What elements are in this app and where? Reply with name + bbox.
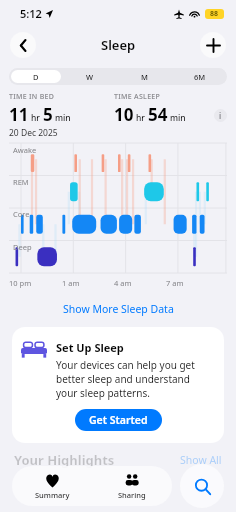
staticText: hr: [136, 112, 145, 124]
staticText: 10: [114, 103, 134, 126]
staticText: Sharing: [118, 490, 146, 500]
staticText: min: [55, 112, 71, 124]
staticText: Get Started: [89, 413, 148, 427]
staticText: 1 am: [62, 278, 80, 288]
button[interactable]: Add: [200, 32, 226, 58]
staticText: Summary: [35, 490, 70, 500]
button[interactable]: W: [65, 70, 115, 83]
staticText: 88: [210, 9, 219, 19]
staticText: Awake: [13, 145, 37, 155]
staticText: D: [33, 72, 39, 82]
staticText: Show More Sleep Data: [63, 302, 174, 316]
staticText: min: [170, 112, 186, 124]
staticText: 5: [43, 103, 53, 126]
staticText: 4 am: [114, 278, 132, 288]
button[interactable]: Get Started: [75, 409, 162, 431]
button[interactable]: Summary: [12, 466, 92, 506]
staticText: Your Highlights: [14, 451, 115, 469]
staticText: Core: [13, 209, 30, 219]
staticText: 11: [9, 103, 29, 126]
button[interactable]: D: [11, 70, 61, 83]
staticText: i: [219, 110, 222, 121]
staticText: M: [141, 72, 148, 82]
staticText: TIME ASLEEP: [114, 92, 161, 102]
staticText: 7 am: [166, 278, 184, 288]
button[interactable]: Back: [10, 32, 36, 58]
button[interactable]: Show More Sleep Data: [0, 302, 236, 316]
staticText: 10 pm: [9, 278, 32, 288]
staticText: REM: [13, 177, 29, 187]
staticText: Sleep: [101, 36, 136, 54]
button[interactable]: Info: [214, 109, 227, 122]
staticText: 6M: [194, 72, 206, 82]
button[interactable]: Search: [180, 464, 224, 508]
staticText: hr: [31, 112, 40, 124]
button[interactable]: M: [119, 70, 170, 83]
button[interactable]: Sharing: [92, 466, 172, 506]
staticText: 5:12: [20, 6, 42, 21]
staticText: Show All: [180, 453, 222, 467]
staticText: Set Up Sleep: [56, 340, 124, 355]
staticText: Your devices can help you get better sle…: [56, 358, 210, 400]
staticText: Deep: [13, 242, 32, 252]
staticText: W: [86, 72, 94, 82]
staticText: TIME IN BED: [9, 92, 55, 102]
button[interactable]: 6M: [174, 70, 225, 83]
staticText: 20 Dec 2025: [9, 127, 58, 139]
staticText: 54: [148, 103, 168, 126]
